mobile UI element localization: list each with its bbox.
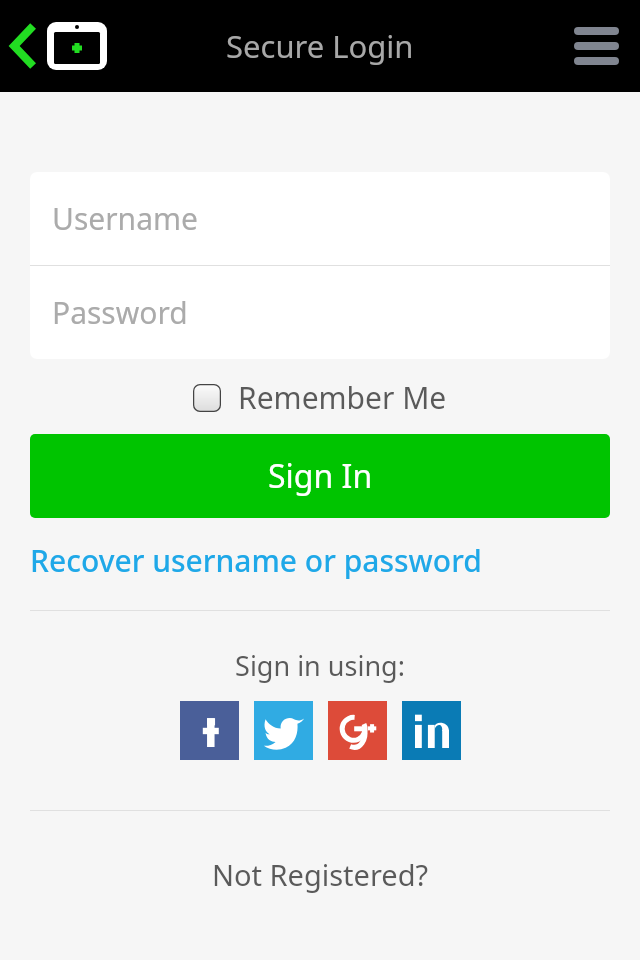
button[interactable]: Twitter	[254, 701, 313, 760]
staticText: Recover username or password	[30, 540, 482, 581]
button[interactable]: Sign In	[30, 434, 610, 518]
staticText: Username	[52, 198, 198, 239]
button[interactable]: Password	[30, 266, 610, 359]
staticText: Password	[52, 292, 188, 333]
button[interactable]: Back	[2, 16, 46, 76]
staticText: Sign In	[268, 454, 373, 498]
button[interactable]: LinkedIn	[402, 701, 461, 760]
button[interactable]: Google Plus	[328, 701, 387, 760]
button[interactable]: Username	[30, 172, 610, 265]
staticText: Secure Login	[226, 25, 414, 67]
button[interactable]: Recover username or password	[30, 540, 610, 581]
staticText: Sign in using:	[0, 647, 640, 684]
button[interactable]: Facebook	[180, 701, 239, 760]
button[interactable]: Add device	[45, 18, 109, 74]
button[interactable]: Menu	[566, 16, 626, 76]
button[interactable]: Remember Me	[193, 377, 447, 418]
staticText: Remember Me	[238, 377, 447, 418]
staticText: Not Registered?	[0, 855, 640, 894]
